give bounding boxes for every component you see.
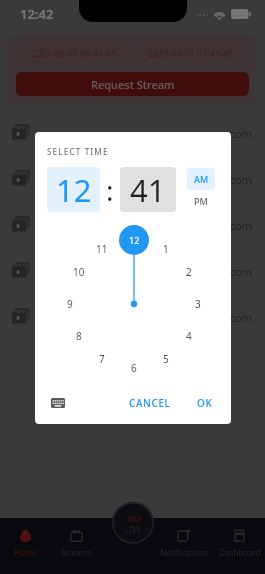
staticText: 12 <box>129 234 140 246</box>
button[interactable]: Request Stream <box>16 72 249 96</box>
staticText: Home <box>14 547 37 558</box>
staticText: 7 <box>99 352 105 366</box>
staticText: 4 <box>186 329 192 343</box>
staticText: 5 <box>163 352 169 366</box>
button[interactable]: AM <box>187 168 215 190</box>
staticText: 12 <box>56 169 92 211</box>
staticText: LIVE <box>125 524 142 535</box>
button[interactable]: Home <box>0 528 51 574</box>
staticText: ....com <box>218 218 253 233</box>
button[interactable]: 12 <box>47 167 100 212</box>
staticText: GO <box>127 512 141 524</box>
staticText: 41 <box>130 169 166 211</box>
staticText: 2 <box>186 265 192 279</box>
staticText: SELECT TIME <box>47 146 109 157</box>
staticText: Notifications <box>160 547 208 558</box>
button[interactable]: Dashboard <box>214 528 265 574</box>
staticText: Request Stream <box>91 77 175 92</box>
button[interactable]: PM <box>187 190 215 212</box>
button[interactable]: 41 <box>120 167 176 212</box>
staticText: 10 <box>73 265 85 279</box>
button[interactable]: ....com <box>0 156 265 202</box>
staticText: 11 <box>96 242 108 256</box>
staticText: 9 <box>67 297 73 311</box>
staticText: Dashboard <box>219 547 261 558</box>
staticText: CANCEL <box>129 396 171 410</box>
button[interactable]: ....com <box>0 294 265 340</box>
button[interactable]: ....com <box>0 202 265 248</box>
button[interactable]: 2021-09-01 01:41:45 <box>136 42 245 64</box>
staticText: Streams <box>61 547 92 558</box>
staticText: ....com <box>218 264 253 279</box>
button[interactable]: ....com <box>0 110 265 156</box>
staticText: : <box>106 171 114 209</box>
button[interactable]: ....com <box>0 248 265 294</box>
staticText: 6 <box>131 361 137 375</box>
button[interactable]: Switch to text input <box>47 392 69 414</box>
staticText: 8 <box>76 329 82 343</box>
staticText: 3 <box>195 297 201 311</box>
button[interactable]: Streams <box>51 528 102 574</box>
button[interactable]: CANCEL <box>121 390 179 416</box>
staticText: PM <box>194 195 208 207</box>
staticText: ....com <box>218 126 253 141</box>
staticText: ....com <box>218 172 253 187</box>
button[interactable]: Go Live <box>112 502 154 544</box>
button[interactable]: 2021-09-01 00:41:45 <box>20 42 128 64</box>
staticText: AM <box>194 173 209 185</box>
staticText: 1 <box>163 242 169 256</box>
staticText: 12:42 <box>20 5 54 23</box>
staticText: ....com <box>218 310 253 325</box>
button[interactable]: OK <box>189 390 221 416</box>
staticText: 2021-09-01 00:41:45 <box>31 47 117 59</box>
staticText: 2021-09-01 01:41:45 <box>148 47 234 59</box>
staticText: OK <box>197 396 213 410</box>
button[interactable]: Notifications <box>153 528 214 574</box>
